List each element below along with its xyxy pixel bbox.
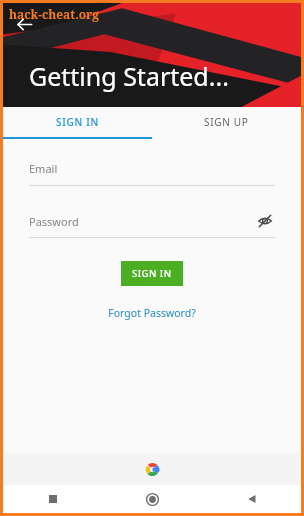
button[interactable]: Home [103,485,202,513]
staticText: Password [29,214,255,229]
button[interactable]: SIGN IN [121,261,183,286]
staticText: Getting Started... [29,59,229,93]
button[interactable]: SIGN IN [3,107,152,137]
button[interactable]: Email [29,161,275,186]
staticText: Forgot Password? [108,306,196,320]
button[interactable]: Back [202,485,301,513]
staticText: Email [29,161,58,176]
button[interactable]: Show password [255,211,275,231]
staticText: SIGN IN [132,267,172,280]
button[interactable]: Sign in with Google [3,453,301,485]
button[interactable]: Recent apps [3,485,103,513]
button[interactable]: Back [9,9,39,39]
staticText: hack-cheat.org [9,6,100,22]
button[interactable]: Password [29,211,275,238]
staticText: SIGN UP [204,115,249,129]
button[interactable]: SIGN UP [152,107,301,137]
staticText: SIGN IN [56,115,99,129]
button[interactable]: Forgot Password? [104,302,200,324]
